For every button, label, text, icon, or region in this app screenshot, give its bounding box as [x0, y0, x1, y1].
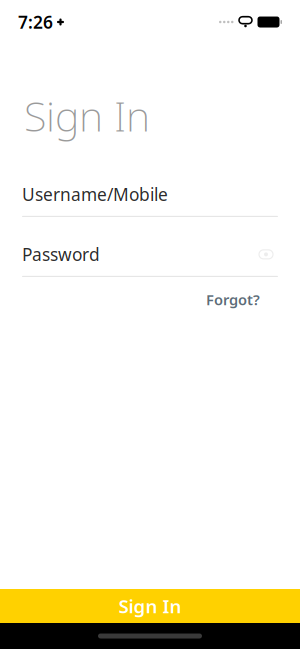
staticText: Forgot? [206, 290, 260, 309]
staticText: Sign In [118, 594, 181, 618]
button[interactable]: Sign In [0, 589, 300, 623]
staticText: Sign In [24, 88, 150, 143]
staticText: Password [22, 243, 100, 266]
button[interactable]: Show password [254, 244, 278, 264]
staticText: Username/Mobile [22, 183, 168, 206]
staticText: 7:26 [18, 10, 53, 33]
button[interactable]: Forgot? [204, 285, 262, 314]
